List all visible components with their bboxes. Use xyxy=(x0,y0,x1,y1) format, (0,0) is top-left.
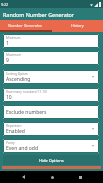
staticText: How many numbers? (1-10) xyxy=(6,90,47,94)
staticText: Number Generator xyxy=(8,23,43,28)
button[interactable]: Parity xyxy=(3,139,99,153)
staticText: 1 xyxy=(6,40,9,47)
staticText: Maximum xyxy=(6,53,22,57)
staticText: Enabled xyxy=(6,128,25,135)
staticText: Parity xyxy=(6,141,15,145)
button[interactable]: Maximum xyxy=(3,51,99,65)
staticText: History xyxy=(71,23,84,28)
button[interactable]: How many numbers? (1-10) xyxy=(3,88,99,102)
staticText: Repetition xyxy=(6,124,22,128)
staticText: 9 xyxy=(6,57,9,64)
button[interactable]: Repetition xyxy=(3,122,99,136)
button[interactable]: Sorting Option xyxy=(3,70,99,84)
button[interactable]: Home xyxy=(46,171,58,183)
staticText: Minimum xyxy=(6,36,21,40)
staticText: Hide Options xyxy=(39,158,64,163)
staticText: 9:22 xyxy=(1,2,9,7)
button[interactable]: Exclude numbers xyxy=(3,105,99,119)
button[interactable]: Number Generator xyxy=(0,20,51,30)
staticText: 10 xyxy=(6,94,12,101)
staticText: Ascending xyxy=(6,76,31,83)
button[interactable]: History xyxy=(51,20,103,30)
staticText: Sorting Option xyxy=(6,72,29,76)
button[interactable]: Minimum xyxy=(3,34,99,48)
staticText: Random Number Generator xyxy=(3,11,75,18)
button[interactable]: Recent apps xyxy=(74,171,86,183)
button[interactable]: Back xyxy=(17,171,29,183)
staticText: Even and odd xyxy=(6,145,38,152)
staticText: Exclude numbers xyxy=(6,109,47,116)
button[interactable]: Hide Options xyxy=(3,155,100,165)
